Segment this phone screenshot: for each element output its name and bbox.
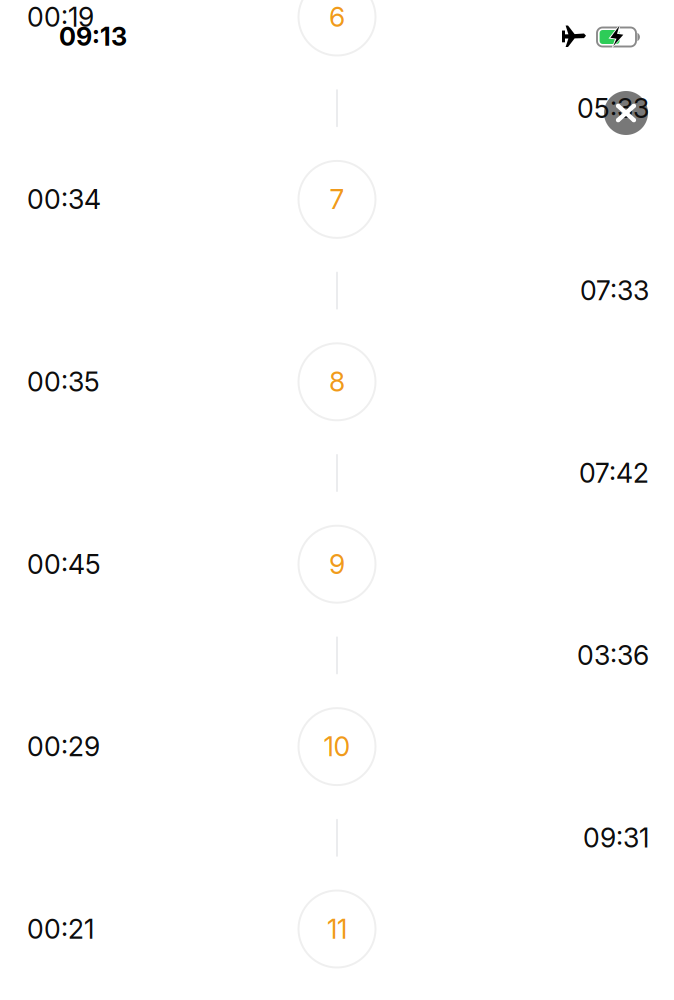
staticText: 8 bbox=[329, 366, 345, 398]
staticText: 07:42 bbox=[579, 457, 649, 489]
staticText: 00:34 bbox=[27, 183, 101, 216]
staticText: 09:31 bbox=[583, 822, 649, 854]
staticText: 00:29 bbox=[27, 730, 100, 763]
staticText: 00:45 bbox=[27, 548, 101, 580]
staticText: 11 bbox=[327, 913, 347, 945]
staticText: 03:36 bbox=[577, 639, 649, 672]
staticText: 07:33 bbox=[580, 274, 649, 307]
staticText: 9 bbox=[329, 548, 345, 580]
button[interactable]: Close bbox=[604, 91, 648, 135]
staticText: 7 bbox=[329, 183, 344, 216]
staticText: 00:35 bbox=[27, 366, 100, 398]
staticText: 05:33 bbox=[577, 92, 649, 124]
staticText: 00:21 bbox=[27, 913, 94, 945]
staticText: 10 bbox=[323, 730, 350, 763]
staticText: 6 bbox=[329, 1, 345, 33]
staticText: 09:13 bbox=[59, 21, 127, 52]
staticText: 00:19 bbox=[27, 1, 94, 33]
